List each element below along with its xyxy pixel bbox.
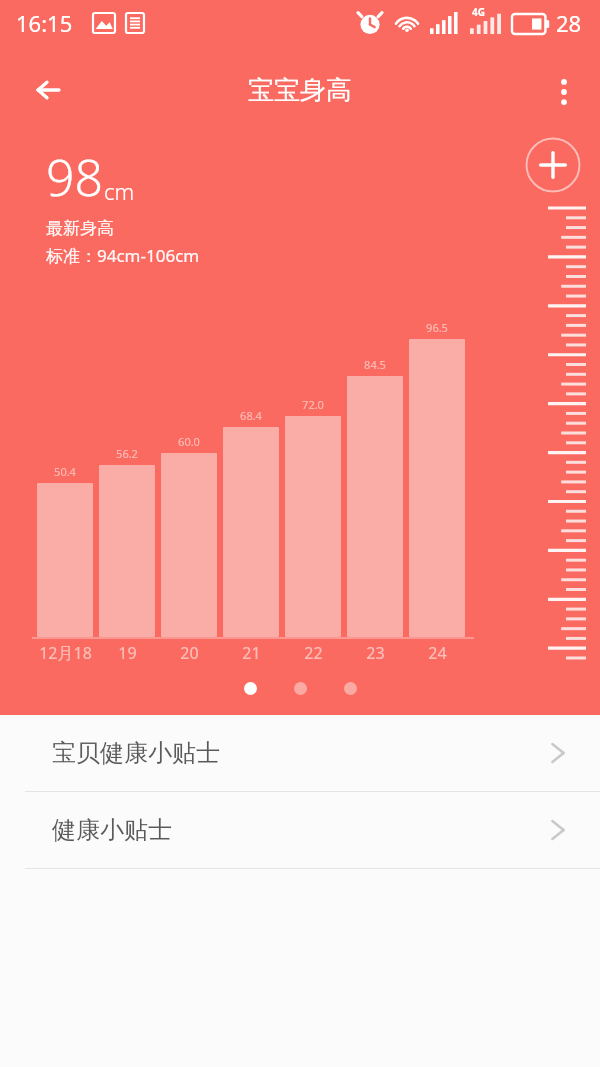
button[interactable]: Back xyxy=(18,60,78,120)
staticText: 50.4 xyxy=(54,464,76,479)
staticText: 60.0 xyxy=(178,434,200,449)
button[interactable]: More options xyxy=(536,64,592,120)
staticText: 标准：94cm-106cm xyxy=(46,244,200,267)
staticText: 21 xyxy=(242,642,261,664)
button[interactable] xyxy=(294,682,307,695)
button[interactable]: 宝贝健康小贴士 xyxy=(0,715,600,791)
staticText: 20 xyxy=(180,642,199,664)
staticText: 56.2 xyxy=(116,446,138,461)
staticText: 12月18 xyxy=(39,642,92,664)
button[interactable]: 健康小贴士 xyxy=(0,792,600,868)
button[interactable] xyxy=(344,682,357,695)
staticText: 宝宝身高 xyxy=(0,74,600,107)
staticText: 96.5 xyxy=(426,320,448,335)
staticText: 16:15 xyxy=(16,8,73,38)
staticText: 19 xyxy=(118,642,137,664)
staticText: 72.0 xyxy=(302,397,324,412)
staticText: 28 xyxy=(556,8,582,38)
staticText: 84.5 xyxy=(364,357,386,372)
staticText: cm xyxy=(104,176,135,206)
staticText: 健康小贴士 xyxy=(52,815,172,845)
staticText: 98 xyxy=(46,143,104,211)
staticText: 最新身高 xyxy=(46,218,114,239)
button[interactable]: Add record xyxy=(525,137,581,193)
staticText: 宝贝健康小贴士 xyxy=(52,738,220,768)
staticText: 68.4 xyxy=(240,408,262,423)
staticText: 4G xyxy=(472,5,485,19)
staticText: 22 xyxy=(304,642,323,664)
staticText: 23 xyxy=(366,642,385,664)
staticText: 24 xyxy=(428,642,447,664)
button[interactable] xyxy=(244,682,257,695)
